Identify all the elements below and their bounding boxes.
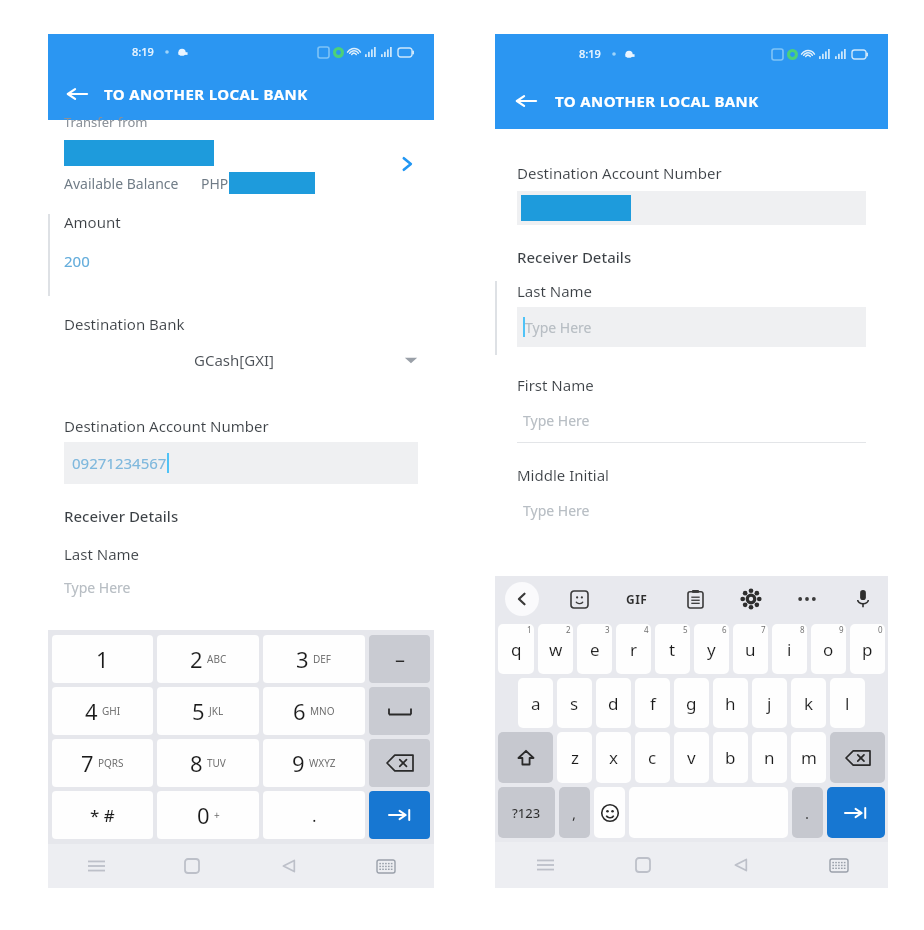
button[interactable]: i [772, 624, 807, 674]
button[interactable]: GIF [620, 584, 654, 614]
button[interactable]: Keyboard [824, 850, 854, 880]
staticText: . [312, 804, 317, 827]
button[interactable]: Back [509, 84, 543, 118]
button[interactable]: w [538, 624, 573, 674]
button[interactable]: Type Here [517, 501, 866, 520]
button[interactable]: Next [369, 791, 430, 839]
staticText: 4 [644, 624, 649, 635]
staticText: Destination Account Number [517, 163, 722, 183]
button[interactable]: t [655, 624, 690, 674]
button[interactable]: Backspace [830, 732, 885, 783]
button[interactable]: z [557, 732, 592, 783]
button[interactable]: Next [827, 787, 885, 838]
button[interactable]: Shift [498, 732, 553, 783]
button[interactable]: s [557, 678, 592, 728]
button[interactable]: p [850, 624, 885, 674]
button[interactable]: 4 [52, 687, 153, 735]
staticText: Receiver Details [517, 247, 632, 267]
button[interactable]: Available Balance [48, 134, 434, 194]
button[interactable]: x [596, 732, 631, 783]
staticText: z [571, 746, 579, 769]
button[interactable]: v [674, 732, 709, 783]
button[interactable]: Keyboard [371, 851, 401, 881]
staticText: t [669, 638, 676, 661]
button[interactable]: r [616, 624, 651, 674]
button[interactable]: h [713, 678, 748, 728]
button[interactable]: n [752, 732, 787, 783]
button[interactable]: Key [369, 687, 430, 735]
button[interactable]: 0 [157, 791, 259, 839]
button[interactable]: j [752, 678, 787, 728]
button[interactable]: m [791, 732, 826, 783]
staticText: w [549, 638, 563, 661]
staticText: DEF [313, 652, 332, 666]
button[interactable]: GCash[GXI] [64, 346, 418, 374]
button[interactable]: Settings [736, 584, 766, 614]
button[interactable]: Key [369, 635, 430, 683]
staticText: 6 [722, 624, 727, 635]
button[interactable]: a [518, 678, 553, 728]
button[interactable]: d [596, 678, 631, 728]
button[interactable]: c [635, 732, 670, 783]
button[interactable]: Period [792, 787, 823, 838]
button[interactable] [517, 191, 866, 225]
staticText: GIF [626, 591, 648, 607]
button[interactable]: Type Here [517, 411, 866, 430]
button[interactable]: y [694, 624, 729, 674]
button[interactable]: Voice input [848, 584, 878, 614]
button[interactable]: Clipboard [680, 584, 710, 614]
button[interactable]: g [674, 678, 709, 728]
button[interactable]: Stickers [564, 584, 594, 614]
button[interactable]: 2 [157, 635, 259, 683]
button[interactable]: 1 [52, 635, 153, 683]
button[interactable]: Key [369, 739, 430, 787]
staticText: l [845, 692, 850, 715]
button[interactable]: 6 [263, 687, 365, 735]
button[interactable]: k [791, 678, 826, 728]
button[interactable]: o [811, 624, 846, 674]
button[interactable]: e [577, 624, 612, 674]
button[interactable]: b [713, 732, 748, 783]
button[interactable]: Menu [530, 850, 560, 880]
staticText: v [687, 746, 696, 769]
button[interactable]: Home [177, 851, 207, 881]
button[interactable]: 7 [52, 739, 153, 787]
staticText: 8:19 [579, 46, 601, 61]
staticText: 5 [192, 696, 205, 726]
button[interactable]: Emoji [594, 787, 625, 838]
button[interactable]: 5 [157, 687, 259, 735]
button[interactable]: More [792, 584, 822, 614]
button[interactable]: Back [274, 851, 304, 881]
staticText: 8 [800, 624, 805, 635]
staticText: 0 [197, 800, 210, 830]
button[interactable]: q [498, 624, 534, 674]
button[interactable]: Menu [81, 851, 111, 881]
button[interactable]: l [830, 678, 865, 728]
button[interactable]: Back [726, 850, 756, 880]
button[interactable]: 3 [263, 635, 365, 683]
button[interactable]: f [635, 678, 670, 728]
button[interactable]: u [733, 624, 768, 674]
staticText: u [745, 638, 756, 661]
button[interactable]: 09271234567 [64, 442, 418, 484]
button[interactable]: ?123 [498, 787, 555, 838]
staticText: 2 [566, 624, 571, 635]
staticText: GHI [102, 704, 121, 718]
staticText: First Name [517, 375, 594, 395]
staticText: 09271234567 [72, 453, 167, 473]
button[interactable]: Home [628, 850, 658, 880]
staticText: e [590, 638, 600, 661]
button[interactable]: Back [60, 77, 94, 111]
staticText: Available Balance [64, 174, 179, 193]
button[interactable]: Back [505, 582, 539, 616]
button[interactable]: 9 [263, 739, 365, 787]
button[interactable]: Type Here [517, 307, 866, 347]
button[interactable]: * # [52, 791, 153, 839]
button[interactable]: 8 [157, 739, 259, 787]
button[interactable]: . [263, 791, 365, 839]
staticText: PQRS [98, 756, 124, 770]
staticText: , [572, 803, 577, 823]
button[interactable]: Comma [559, 787, 590, 838]
staticText: 200 [64, 251, 90, 271]
